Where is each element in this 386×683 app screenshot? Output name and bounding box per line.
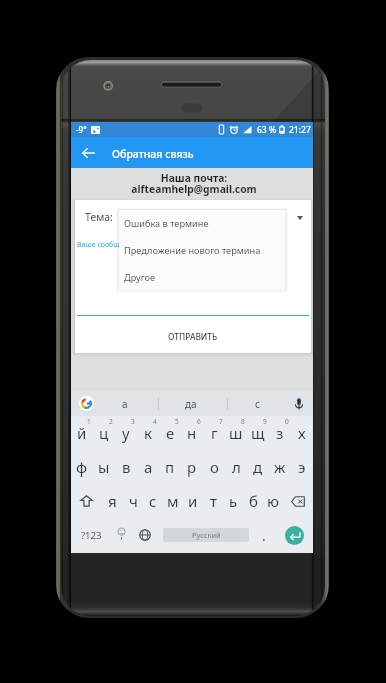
staticText: щ — [251, 423, 265, 443]
staticText: б — [249, 491, 258, 511]
button[interactable]: г — [203, 416, 225, 450]
button[interactable]: ш — [225, 416, 247, 450]
button[interactable]: Back — [75, 137, 101, 168]
staticText: и — [188, 491, 198, 511]
button[interactable]: с — [233, 391, 281, 416]
button[interactable]: й — [71, 416, 93, 450]
staticText: ц — [99, 423, 109, 443]
button[interactable]: л — [225, 450, 247, 484]
button[interactable]: п — [159, 450, 181, 484]
staticText: Наша почта: — [73, 171, 315, 185]
button[interactable]: Shift — [71, 484, 102, 518]
button[interactable]: щ — [247, 416, 269, 450]
button[interactable]: и — [183, 484, 203, 518]
button[interactable]: Subject spinner — [111, 204, 309, 228]
button[interactable]: Voice input — [289, 391, 309, 416]
staticText: 8 — [241, 417, 245, 426]
button[interactable]: ы — [93, 450, 115, 484]
staticText: 0 — [285, 417, 289, 426]
button[interactable]: е — [159, 416, 181, 450]
staticText: д — [253, 457, 263, 477]
staticText: н — [187, 423, 197, 443]
button[interactable]: Другое — [119, 264, 285, 290]
button[interactable]: в — [115, 450, 137, 484]
staticText: ж — [274, 457, 286, 477]
button[interactable]: а — [101, 391, 149, 416]
button[interactable]: Русский — [163, 528, 249, 542]
staticText: 3 — [131, 417, 135, 426]
button[interactable]: о — [203, 450, 225, 484]
staticText: 1 — [87, 417, 91, 426]
staticText: а — [144, 457, 153, 477]
button[interactable]: ж — [269, 450, 291, 484]
staticText: 6 — [197, 417, 201, 426]
button[interactable]: а — [137, 450, 159, 484]
button[interactable]: ф — [71, 450, 93, 484]
button[interactable]: у — [115, 416, 137, 450]
staticText: Обратная связь — [112, 147, 194, 161]
button[interactable]: Google search — [75, 391, 97, 416]
staticText: с — [255, 397, 260, 411]
staticText: Другое — [124, 271, 156, 284]
button[interactable]: ?123 — [73, 518, 109, 552]
staticText: л — [232, 457, 241, 477]
staticText: в — [122, 457, 131, 477]
staticText: ф — [76, 457, 88, 477]
staticText: 4 — [153, 417, 157, 426]
button[interactable]: с — [143, 484, 163, 518]
button[interactable]: х — [291, 416, 313, 450]
staticText: т — [210, 491, 217, 511]
button[interactable]: я — [102, 484, 123, 518]
staticText: ы — [98, 457, 110, 477]
button[interactable]: т — [203, 484, 223, 518]
staticText: 63 % — [257, 124, 277, 136]
button[interactable]: ц — [93, 416, 115, 450]
staticText: ч — [129, 491, 138, 511]
button[interactable]: . — [251, 518, 276, 552]
button[interactable]: ОТПРАВИТЬ — [75, 319, 311, 353]
button[interactable]: д — [247, 450, 269, 484]
staticText: 21:27 — [289, 124, 311, 136]
staticText: й — [77, 423, 87, 443]
button[interactable]: ч — [123, 484, 143, 518]
button[interactable]: Emoji — [107, 518, 135, 552]
button[interactable]: Backspace — [283, 484, 313, 518]
staticText: . — [262, 526, 266, 545]
staticText: х — [298, 423, 306, 443]
staticText: ь — [229, 491, 238, 511]
button[interactable]: Предложение нового термина — [119, 237, 285, 264]
staticText: Русский — [192, 530, 221, 540]
staticText: -9° — [76, 124, 87, 135]
button[interactable]: н — [181, 416, 203, 450]
staticText: э — [298, 457, 306, 477]
staticText: 7 — [219, 417, 223, 426]
staticText: Предложение нового термина — [124, 244, 261, 257]
button[interactable]: да — [167, 391, 215, 416]
button[interactable]: б — [243, 484, 263, 518]
staticText: Тема: — [85, 210, 113, 224]
staticText: Ваше сообщение — [77, 240, 136, 250]
staticText: ю — [267, 491, 279, 511]
button[interactable]: к — [137, 416, 159, 450]
button[interactable]: з — [269, 416, 291, 450]
staticText: о — [210, 457, 219, 477]
button[interactable]: Change language — [132, 518, 158, 552]
staticText: ОТПРАВИТЬ — [168, 331, 218, 342]
staticText: да — [185, 397, 197, 411]
button[interactable]: м — [163, 484, 183, 518]
staticText: з — [276, 423, 284, 443]
button[interactable]: ь — [223, 484, 243, 518]
staticText: ш — [229, 423, 243, 443]
staticText: г — [211, 423, 218, 443]
staticText: 9 — [263, 417, 267, 426]
button[interactable]: э — [291, 450, 313, 484]
staticText: м — [167, 491, 179, 511]
staticText: ?123 — [81, 529, 102, 542]
button[interactable]: ю — [263, 484, 283, 518]
staticText: п — [165, 457, 175, 477]
button[interactable]: р — [181, 450, 203, 484]
staticText: 2 — [109, 417, 113, 426]
staticText: 5 — [175, 417, 179, 426]
button[interactable]: Ошибка в термине — [119, 210, 285, 237]
button[interactable]: Enter — [285, 526, 304, 545]
